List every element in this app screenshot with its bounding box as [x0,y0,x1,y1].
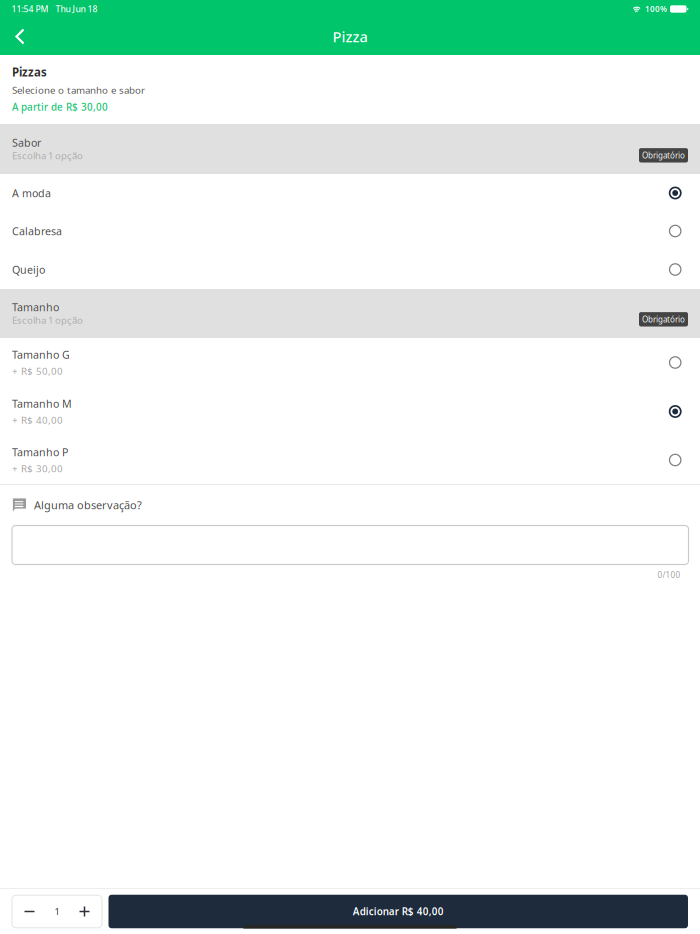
staticText: 100% [645,4,667,14]
button[interactable]: Tamanho M [0,387,700,436]
staticText: 11:54 PM [11,3,48,15]
button[interactable]: Calabresa [0,212,700,250]
staticText: 0/100 [657,570,680,580]
staticText: Tamanho [12,300,59,314]
staticText: A partir de R$ 30,00 [12,100,108,113]
staticText: Obrigatório [642,314,685,325]
button[interactable]: Queijo [0,250,700,289]
staticText: Tamanho P [12,445,68,459]
staticText: Queijo [12,262,45,277]
staticText: Escolha 1 opção [12,314,83,326]
staticText: Pizza [332,27,367,46]
staticText: Obrigatório [642,150,685,161]
button[interactable]: Tamanho P [0,436,700,484]
staticText: Sabor [12,135,41,150]
button[interactable]: A moda [0,174,700,212]
staticText: Tamanho M [12,396,72,411]
staticText: Calabresa [12,224,62,238]
staticText: Tamanho G [12,347,70,362]
staticText: Selecione o tamanho e sabor [12,83,145,96]
staticText: + R$ 50,00 [12,365,63,377]
staticText: A moda [12,186,51,200]
staticText: Escolha 1 opção [12,149,83,162]
staticText: + R$ 30,00 [12,462,63,475]
button[interactable]: Adicionar R$ 40,00 [108,895,688,928]
staticText: 1 [54,905,59,918]
button[interactable]: Increase quantity [69,895,100,928]
button[interactable]: Back [0,18,39,55]
staticText: Pizzas [12,64,47,80]
button[interactable]: Decrease quantity [14,895,45,928]
staticText: Adicionar R$ 40,00 [353,905,444,918]
staticText: + R$ 40,00 [12,414,63,426]
staticText: Thu Jun 18 [55,3,97,15]
button[interactable]: Tamanho G [0,338,700,387]
staticText: Alguma observação? [34,498,142,512]
